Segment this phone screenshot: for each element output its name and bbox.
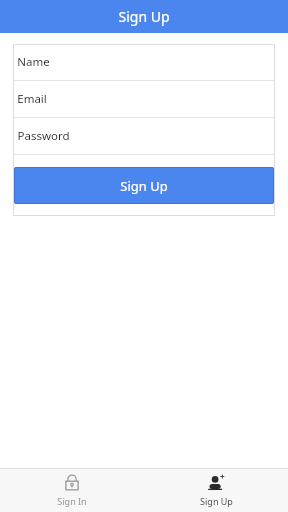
staticText: Email bbox=[17, 91, 47, 107]
staticText: Sign Up bbox=[120, 177, 168, 195]
staticText: Sign Up bbox=[118, 7, 170, 26]
button[interactable]: Name bbox=[13, 44, 275, 80]
staticText: Name bbox=[17, 54, 50, 70]
button[interactable]: Email bbox=[13, 81, 275, 117]
button[interactable]: Sign In bbox=[0, 468, 144, 512]
other: Sign Up bbox=[207, 474, 225, 492]
staticText: Sign In bbox=[57, 495, 87, 507]
other: Sign In bbox=[63, 474, 81, 492]
button[interactable]: Sign Up bbox=[144, 468, 288, 512]
button[interactable]: Sign Up bbox=[14, 167, 274, 204]
staticText: Password bbox=[17, 128, 70, 144]
staticText: Sign Up bbox=[200, 495, 233, 507]
button[interactable]: Password bbox=[13, 118, 275, 154]
